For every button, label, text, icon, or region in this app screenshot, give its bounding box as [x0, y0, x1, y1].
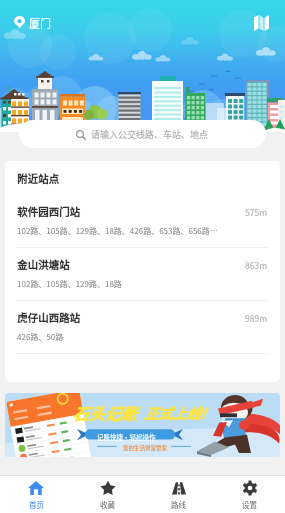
button[interactable]: 石头记账 — [5, 393, 280, 457]
staticText: 您的生活财富管家 — [123, 444, 168, 452]
button[interactable]: 首页 — [0, 476, 72, 513]
staticText: 记账快捷·轻松操作 — [97, 432, 156, 441]
button[interactable]: 路线 — [143, 476, 214, 513]
staticText: 首页 — [29, 499, 44, 510]
staticText: 设置 — [242, 499, 257, 510]
staticText: 金山洪塘站 — [17, 257, 70, 272]
staticText: 989m — [245, 312, 268, 324]
staticText: 虎仔山西路站 — [17, 310, 80, 325]
staticText: 863m — [245, 259, 268, 271]
button[interactable]: Map — [247, 9, 275, 37]
staticText: 收藏 — [100, 499, 115, 510]
staticText: 软件园西门站 — [17, 204, 80, 219]
staticText: 575m — [245, 206, 268, 218]
button[interactable]: 收藏 — [72, 476, 143, 513]
staticText: 厦门 — [29, 15, 51, 31]
button[interactable]: 设置 — [214, 476, 285, 513]
button[interactable]: 虎仔山西路站 — [5, 301, 280, 353]
staticText: 石头记账 — [72, 401, 137, 424]
button[interactable]: 软件园西门站 — [5, 195, 280, 247]
staticText: 426路、50路 — [17, 331, 64, 343]
button[interactable]: 厦门 — [10, 11, 55, 35]
staticText: 正式上线! — [144, 403, 205, 423]
staticText: 102路、105路、129路、18路、426路、653路、656路… — [17, 225, 218, 237]
staticText: 路线 — [171, 499, 186, 510]
button[interactable]: 金山洪塘站 — [5, 248, 280, 300]
staticText: 102路、105路、129路、18路 — [17, 278, 122, 290]
staticText: 附近站点 — [17, 171, 59, 186]
staticText: 请输入公交线路、车站、地点 — [91, 128, 209, 141]
button[interactable]: 请输入公交线路、车站、地点 — [19, 120, 266, 148]
